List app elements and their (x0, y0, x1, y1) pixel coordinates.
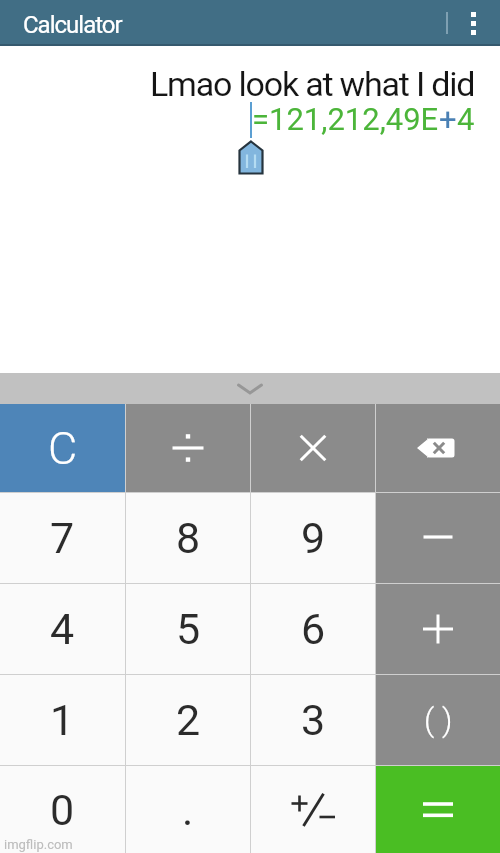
staticText: ( ) (424, 701, 453, 739)
staticText: 3 (301, 695, 326, 745)
staticText: imgflip.com (4, 837, 73, 852)
button[interactable]: 1 (0, 675, 125, 765)
staticText: . (182, 785, 194, 835)
button[interactable]: ( ) (376, 675, 500, 765)
button[interactable]: C (0, 404, 125, 492)
button[interactable] (0, 373, 500, 404)
button[interactable] (251, 404, 375, 492)
staticText: 9 (301, 513, 326, 563)
staticText: Calculator (23, 11, 122, 39)
button[interactable]: 0 (0, 766, 125, 853)
button[interactable]: 3 (251, 675, 375, 765)
staticText: =121,212,49E (252, 101, 439, 137)
button[interactable]: 7 (0, 493, 125, 583)
button[interactable]: 2 (126, 675, 250, 765)
staticText: 8 (176, 513, 201, 563)
button[interactable]: 9 (251, 493, 375, 583)
button[interactable] (376, 584, 500, 674)
staticText: Lmao look at what I did (150, 64, 475, 104)
button[interactable]: 8 (126, 493, 250, 583)
staticText: 4 (50, 604, 75, 654)
staticText: 6 (301, 604, 326, 654)
button[interactable] (376, 766, 500, 853)
button[interactable]: . (126, 766, 250, 853)
staticText: 5 (176, 604, 201, 654)
button[interactable] (126, 404, 250, 492)
staticText: 2 (176, 695, 201, 745)
staticText: 0 (50, 785, 75, 835)
button[interactable]: 6 (251, 584, 375, 674)
staticText: 7 (50, 513, 75, 563)
button[interactable]: 4 (0, 584, 125, 674)
staticText: 4 (457, 101, 475, 137)
button[interactable] (376, 493, 500, 583)
button[interactable] (471, 12, 476, 35)
staticText: C (48, 422, 78, 475)
button[interactable] (251, 766, 375, 853)
button[interactable]: 5 (126, 584, 250, 674)
button[interactable] (376, 404, 500, 492)
staticText: 1 (50, 695, 75, 745)
staticText: + (439, 101, 457, 137)
